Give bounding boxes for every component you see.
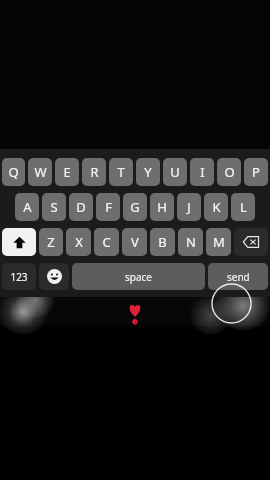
- button[interactable]: E: [55, 158, 79, 186]
- button[interactable]: C: [94, 228, 119, 256]
- button[interactable]: Shift: [2, 228, 36, 256]
- button[interactable]: Y: [136, 158, 160, 186]
- staticText: N: [186, 233, 196, 251]
- staticText: W: [34, 163, 47, 181]
- staticText: O: [224, 163, 235, 181]
- staticText: K: [212, 198, 221, 216]
- staticText: A: [23, 198, 32, 216]
- staticText: V: [131, 233, 139, 251]
- staticText: T: [117, 163, 125, 181]
- button[interactable]: U: [163, 158, 187, 186]
- staticText: Q: [8, 163, 19, 181]
- staticText: M: [213, 233, 225, 251]
- staticText: 123: [10, 270, 28, 284]
- button[interactable]: B: [150, 228, 175, 256]
- staticText: X: [75, 233, 83, 251]
- button[interactable]: J: [177, 193, 201, 221]
- staticText: E: [63, 163, 71, 181]
- staticText: S: [50, 198, 58, 216]
- staticText: C: [102, 233, 111, 251]
- staticText: D: [76, 198, 86, 216]
- staticText: Y: [144, 163, 152, 181]
- staticText: R: [90, 163, 99, 181]
- staticText: J: [187, 198, 191, 216]
- button[interactable]: T: [109, 158, 133, 186]
- staticText: Z: [47, 233, 55, 251]
- button[interactable]: V: [122, 228, 147, 256]
- staticText: U: [170, 163, 180, 181]
- button[interactable]: Emoji: [39, 263, 69, 290]
- button[interactable]: Z: [39, 228, 63, 256]
- button[interactable]: P: [244, 158, 268, 186]
- button[interactable]: F: [96, 193, 120, 221]
- button[interactable]: space: [72, 263, 205, 290]
- button[interactable]: L: [231, 193, 255, 221]
- button[interactable]: K: [204, 193, 228, 221]
- button[interactable]: D: [69, 193, 93, 221]
- button[interactable]: S: [42, 193, 66, 221]
- staticText: I: [200, 163, 205, 181]
- staticText: P: [252, 163, 260, 181]
- staticText: H: [157, 198, 167, 216]
- staticText: B: [158, 233, 167, 251]
- staticText: send: [227, 270, 250, 284]
- staticText: G: [130, 198, 140, 216]
- staticText: space: [125, 270, 152, 284]
- button[interactable]: W: [28, 158, 52, 186]
- button[interactable]: Backspace: [234, 228, 268, 256]
- button[interactable]: H: [150, 193, 174, 221]
- button[interactable]: O: [217, 158, 241, 186]
- button[interactable]: I: [190, 158, 214, 186]
- button[interactable]: 123: [2, 263, 36, 290]
- button[interactable]: G: [123, 193, 147, 221]
- button[interactable]: X: [66, 228, 91, 256]
- button[interactable]: Q: [2, 158, 25, 186]
- button[interactable]: M: [206, 228, 231, 256]
- staticText: L: [240, 198, 247, 216]
- button[interactable]: R: [82, 158, 106, 186]
- staticText: F: [105, 198, 112, 216]
- button[interactable]: A: [15, 193, 39, 221]
- button[interactable]: send: [208, 263, 268, 290]
- button[interactable]: N: [178, 228, 203, 256]
